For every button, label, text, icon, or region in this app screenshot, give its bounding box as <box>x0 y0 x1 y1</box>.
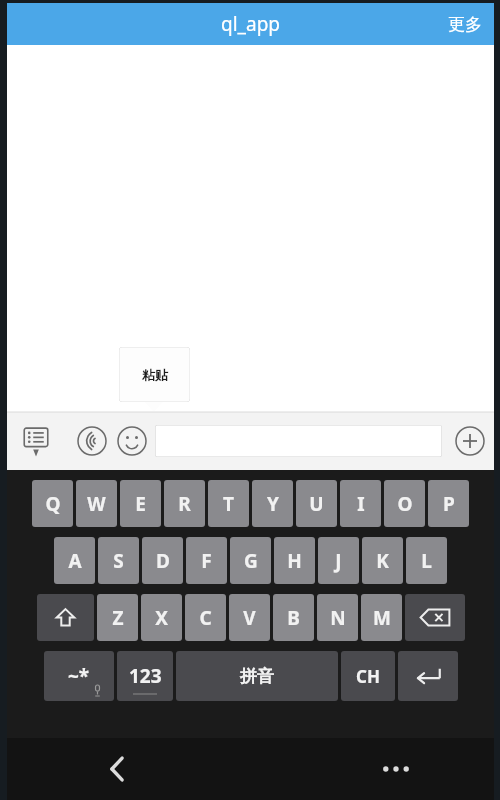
button[interactable]: CH <box>341 651 395 701</box>
button[interactable]: Menu list <box>17 422 55 460</box>
staticText: 123 <box>129 663 162 689</box>
staticText: T <box>223 491 234 517</box>
button[interactable]: 更多 <box>436 5 494 44</box>
button[interactable]: ~* <box>44 651 114 701</box>
button[interactable]: Enter <box>398 651 458 701</box>
button[interactable]: R <box>164 480 205 527</box>
staticText: Y <box>267 491 279 517</box>
staticText: I <box>357 491 365 517</box>
staticText: S <box>113 548 124 574</box>
staticText: ~* <box>68 663 90 689</box>
button[interactable]: X <box>141 594 182 641</box>
button[interactable]: P <box>428 480 469 527</box>
staticText: C <box>199 605 212 631</box>
staticText: G <box>244 548 258 574</box>
staticText: Z <box>112 605 124 631</box>
button[interactable]: C <box>185 594 226 641</box>
button[interactable]: Shift <box>37 594 94 641</box>
button[interactable]: T <box>208 480 249 527</box>
button[interactable]: U <box>296 480 337 527</box>
staticText: X <box>155 605 168 631</box>
button[interactable]: Backspace <box>405 594 465 641</box>
staticText: H <box>287 548 302 574</box>
button[interactable]: H <box>274 537 315 584</box>
button[interactable]: More options <box>452 423 488 459</box>
staticText: L <box>421 548 432 574</box>
button[interactable]: K <box>362 537 403 584</box>
button[interactable]: 123 <box>117 651 173 701</box>
button[interactable]: Y <box>252 480 293 527</box>
staticText: R <box>178 491 191 517</box>
button[interactable]: A <box>54 537 95 584</box>
button[interactable]: Q <box>32 480 73 527</box>
button[interactable]: E <box>120 480 161 527</box>
staticText: D <box>156 548 170 574</box>
staticText: CH <box>356 665 380 688</box>
button[interactable]: W <box>76 480 117 527</box>
staticText: 拼音 <box>240 666 274 687</box>
button[interactable]: I <box>340 480 381 527</box>
staticText: K <box>376 548 389 574</box>
button[interactable]: M <box>361 594 402 641</box>
staticText: M <box>373 605 391 631</box>
staticText: B <box>287 605 300 631</box>
staticText: A <box>68 548 82 574</box>
button[interactable]: N <box>317 594 358 641</box>
button[interactable]: Emoji <box>115 424 149 458</box>
staticText: 更多 <box>448 14 482 35</box>
staticText: U <box>309 491 324 517</box>
staticText: W <box>87 491 106 517</box>
staticText: P <box>443 491 455 517</box>
button[interactable]: S <box>98 537 139 584</box>
button[interactable]: F <box>186 537 227 584</box>
staticText: E <box>135 491 146 517</box>
staticText: ql_app <box>221 11 281 37</box>
staticText: 粘贴 <box>142 367 168 383</box>
button[interactable]: 拼音 <box>176 651 338 701</box>
staticText: Q <box>45 491 61 517</box>
button[interactable]: L <box>406 537 447 584</box>
button[interactable]: J <box>318 537 359 584</box>
button[interactable]: Z <box>97 594 138 641</box>
staticText: J <box>335 548 342 574</box>
button[interactable]: Message input <box>155 425 442 457</box>
button[interactable]: G <box>230 537 271 584</box>
staticText: V <box>243 605 256 631</box>
button[interactable]: Voice message <box>75 424 109 458</box>
button[interactable]: O <box>384 480 425 527</box>
button[interactable]: Recent apps <box>374 747 418 791</box>
button[interactable]: V <box>229 594 270 641</box>
staticText: F <box>201 548 212 574</box>
button[interactable]: B <box>273 594 314 641</box>
staticText: O <box>397 491 413 517</box>
button[interactable]: D <box>142 537 183 584</box>
staticText: N <box>330 605 346 631</box>
button[interactable]: Back <box>95 747 139 791</box>
button[interactable]: 粘贴 <box>119 347 190 412</box>
